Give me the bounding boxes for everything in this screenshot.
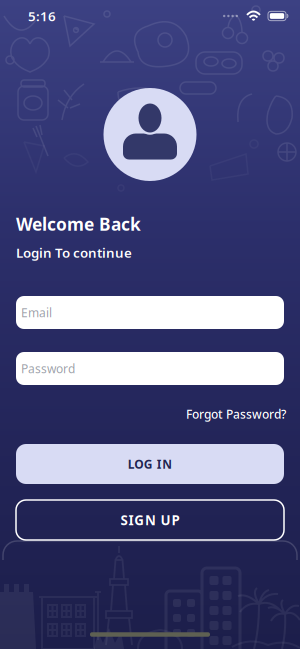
staticText: Welcome Back	[16, 212, 141, 235]
staticText: LOG IN	[128, 456, 172, 472]
button[interactable]: Email	[16, 296, 284, 329]
button[interactable]: LOG IN	[16, 444, 284, 484]
staticText: Password	[21, 360, 75, 376]
staticText: SIGN UP	[121, 511, 179, 529]
button[interactable]: SIGN UP	[16, 500, 284, 540]
staticText: Forgot Password?	[186, 406, 286, 422]
staticText: 5:16	[28, 7, 56, 25]
button[interactable]: Password	[16, 352, 284, 385]
staticText: Login To continue	[16, 244, 132, 261]
staticText: Email	[21, 304, 52, 320]
button[interactable]: Forgot Password?	[186, 406, 286, 422]
